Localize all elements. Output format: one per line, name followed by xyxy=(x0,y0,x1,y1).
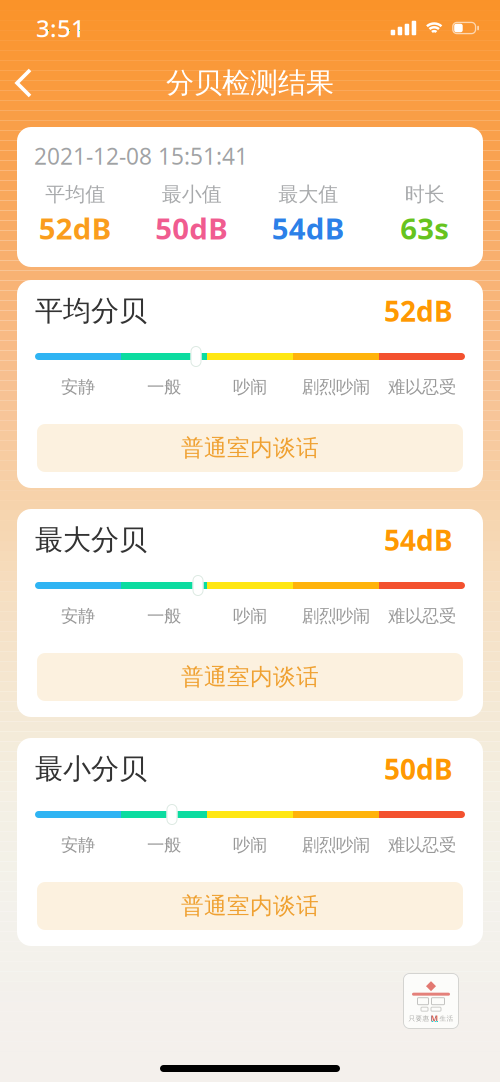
staticText: M xyxy=(430,1013,438,1024)
staticText: 分 xyxy=(91,752,119,786)
staticText: 安静 xyxy=(61,376,95,398)
staticText: 贝 xyxy=(119,523,147,557)
staticText: 最 xyxy=(35,523,63,557)
staticText: 最 xyxy=(35,752,63,786)
staticText: 难以忍受 xyxy=(388,834,456,856)
staticText: 普通室内谈话 xyxy=(181,892,319,920)
staticText: 63s xyxy=(400,209,449,248)
staticText: 难以忍受 xyxy=(388,605,456,627)
staticText: 54dB xyxy=(384,521,453,559)
staticText: 普通室内谈话 xyxy=(181,663,319,691)
staticText: 52dB xyxy=(39,209,112,248)
button[interactable]: 返回 xyxy=(0,70,50,96)
staticText: 54dB xyxy=(272,209,345,248)
staticText: 剧烈吵闹 xyxy=(302,376,370,398)
staticText: 生活 xyxy=(439,1014,453,1023)
staticText: 普通室内谈话 xyxy=(181,434,319,462)
staticText: 安静 xyxy=(61,834,95,856)
staticText: 剧烈吵闹 xyxy=(302,834,370,856)
staticText: 安静 xyxy=(61,605,95,627)
staticText: 剧烈吵闹 xyxy=(302,605,370,627)
staticText: 最大值 xyxy=(278,182,338,207)
staticText: 分 xyxy=(91,294,119,328)
staticText: 一般 xyxy=(147,834,181,856)
staticText: 平 xyxy=(35,294,63,328)
staticText: 吵闹 xyxy=(233,376,267,398)
button[interactable]: 普通室内谈话 xyxy=(37,424,463,472)
staticText: 分 xyxy=(91,523,119,557)
staticText: 时长 xyxy=(405,182,445,207)
staticText: 只要惠 xyxy=(408,1014,429,1023)
staticText: 均 xyxy=(63,294,91,328)
staticText: 分贝检测结果 xyxy=(166,66,334,100)
staticText: 贝 xyxy=(119,752,147,786)
staticText: 吵闹 xyxy=(233,605,267,627)
staticText: 难以忍受 xyxy=(388,376,456,398)
staticText: 一般 xyxy=(147,376,181,398)
staticText: 52dB xyxy=(384,292,453,330)
staticText: 吵闹 xyxy=(233,834,267,856)
staticText: 50dB xyxy=(155,209,228,248)
staticText: 2021-12-08 15:51:41 xyxy=(34,141,248,171)
staticText: 最小值 xyxy=(162,182,222,207)
staticText: 小 xyxy=(63,752,91,786)
staticText: 贝 xyxy=(119,294,147,328)
button[interactable]: 普通室内谈话 xyxy=(37,653,463,701)
staticText: 大 xyxy=(63,523,91,557)
staticText: 50dB xyxy=(384,750,453,788)
button[interactable]: 普通室内谈话 xyxy=(37,882,463,930)
staticText: 3:51 xyxy=(36,12,85,44)
staticText: 一般 xyxy=(147,605,181,627)
staticText: 平均值 xyxy=(45,182,105,207)
